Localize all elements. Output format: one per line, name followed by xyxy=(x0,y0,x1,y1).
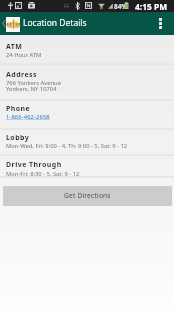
staticText: 24 Hour ATM xyxy=(6,51,42,59)
button[interactable]: Get Directions xyxy=(3,186,172,206)
staticText: Location Details xyxy=(23,17,87,29)
staticText: Phone xyxy=(6,104,31,114)
staticText: Get Directions xyxy=(64,191,111,200)
staticText: 1-866-462-2658 xyxy=(6,113,50,121)
staticText: Mon-Fri: 8:30 - 5, Sat: 9 - 12 xyxy=(6,170,80,178)
staticText: 766 Yonkers Avenue xyxy=(6,79,61,87)
staticText: ATM xyxy=(6,42,23,52)
staticText: 4:15 PM xyxy=(135,1,168,12)
staticText: Drive Through xyxy=(6,160,62,170)
staticText: 84% xyxy=(114,2,128,11)
staticText: Yonkers, NY 10704 xyxy=(6,85,57,93)
staticText: Address xyxy=(6,70,38,80)
staticText: Mon-Wed, Fri: 9:00 - 4, Th: 9:00 - 5, Sa… xyxy=(6,142,128,150)
button[interactable]: More options xyxy=(154,12,168,35)
button[interactable]: Navigate up xyxy=(0,12,20,35)
staticText: Lobby xyxy=(6,133,30,143)
